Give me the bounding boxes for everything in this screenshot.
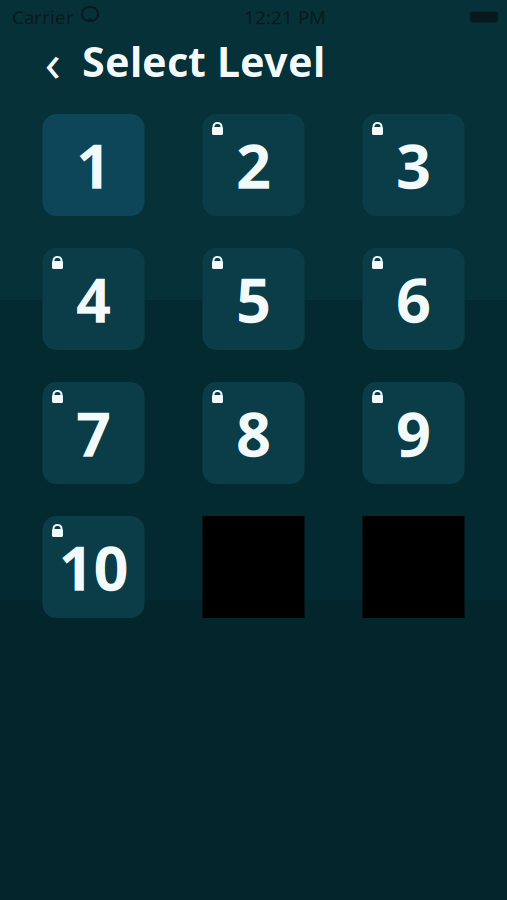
- button[interactable]: 1: [42, 114, 144, 216]
- staticText: ‹: [44, 26, 61, 96]
- button[interactable]: 10: [42, 516, 144, 618]
- button[interactable]: 7: [42, 382, 144, 484]
- staticText: Select Level: [82, 34, 325, 88]
- button[interactable]: Back: [36, 39, 70, 83]
- staticText: 6: [396, 258, 431, 340]
- staticText: 8: [236, 392, 271, 474]
- button[interactable]: 8: [202, 382, 304, 484]
- staticText: Carrier: [12, 5, 74, 29]
- staticText: 4: [76, 258, 111, 340]
- button[interactable]: 6: [362, 248, 464, 350]
- staticText: 9: [396, 392, 431, 474]
- staticText: 5: [236, 258, 271, 340]
- staticText: 1: [76, 124, 111, 206]
- button[interactable]: 9: [362, 382, 464, 484]
- staticText: 7: [76, 392, 111, 474]
- staticText: 12:21 PM: [244, 5, 326, 29]
- staticText: 2: [236, 124, 271, 206]
- button[interactable]: 3: [362, 114, 464, 216]
- button[interactable]: 2: [202, 114, 304, 216]
- button[interactable]: 4: [42, 248, 144, 350]
- staticText: 10: [58, 526, 128, 608]
- staticText: 3: [396, 124, 431, 206]
- button[interactable]: 5: [202, 248, 304, 350]
